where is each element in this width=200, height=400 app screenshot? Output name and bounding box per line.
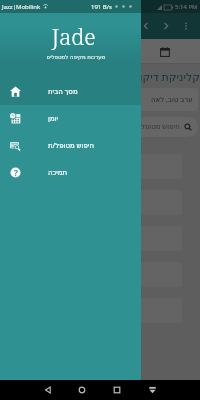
button[interactable]: More options (180, 20, 192, 32)
staticText: יומן (48, 115, 59, 123)
staticText: ערב טוב, לאה (151, 95, 193, 105)
staticText: Jazz|Mobilink (2, 3, 41, 11)
staticText: Jade (6, 21, 141, 51)
staticText: מערכות מקיפה למטפלים (11, 53, 141, 60)
button[interactable]: Hide keyboard (146, 383, 159, 396)
button[interactable] (10, 298, 182, 323)
button[interactable]: ? (0, 159, 141, 186)
staticText: תמיכה (48, 169, 68, 177)
staticText: חיפוש מטופל/ת (48, 141, 94, 151)
button[interactable]: חיפוש מטופל/ת (0, 132, 141, 159)
button[interactable] (10, 154, 182, 179)
button[interactable]: Recent apps (110, 383, 124, 397)
button[interactable]: יומן (0, 105, 141, 132)
button[interactable]: Home (75, 383, 89, 397)
button[interactable]: חיפוש מטופל (10, 117, 198, 137)
button[interactable] (10, 226, 182, 251)
staticText: מסך הבית (48, 87, 78, 97)
staticText: 5:14 PM (175, 3, 198, 11)
button[interactable]: מסך הבית (0, 78, 141, 105)
staticText: ? (14, 167, 18, 178)
button[interactable] (10, 262, 182, 287)
button[interactable]: Back (41, 383, 55, 397)
staticText: קליניקת דיקור (0, 69, 200, 84)
button[interactable]: ערב טוב, לאה (10, 88, 198, 111)
button[interactable]: Back (140, 20, 152, 32)
button[interactable]: Forward (160, 20, 172, 32)
staticText: 191 B/s (91, 3, 112, 11)
staticText: חיפוש מטופל (141, 122, 180, 132)
button[interactable] (10, 190, 182, 215)
